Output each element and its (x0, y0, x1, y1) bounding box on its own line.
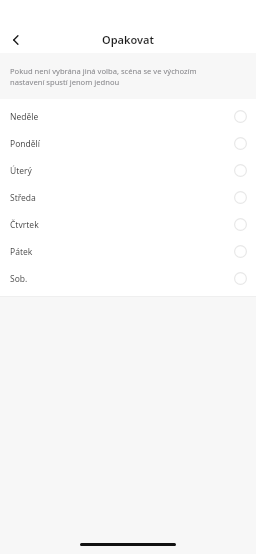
staticText: Opakovat (102, 32, 154, 47)
button[interactable]: Středa (0, 184, 256, 211)
button[interactable]: Čtvrtek (0, 211, 256, 238)
staticText: Pokud není vybrána jiná volba, scéna se … (10, 66, 197, 87)
staticText: Středa (10, 192, 36, 204)
button[interactable]: Pondělí (0, 130, 256, 157)
staticText: Úterý (10, 165, 32, 177)
staticText: Sob. (10, 273, 28, 285)
staticText: Čtvrtek (10, 219, 39, 231)
staticText: Pondělí (10, 138, 40, 150)
staticText: Pátek (10, 246, 33, 258)
button[interactable]: Pátek (0, 238, 256, 265)
button[interactable]: Neděle (0, 103, 256, 130)
button[interactable]: Sob. (0, 265, 256, 292)
staticText: Neděle (10, 111, 39, 123)
button[interactable]: Back (4, 28, 28, 52)
button[interactable]: Úterý (0, 157, 256, 184)
